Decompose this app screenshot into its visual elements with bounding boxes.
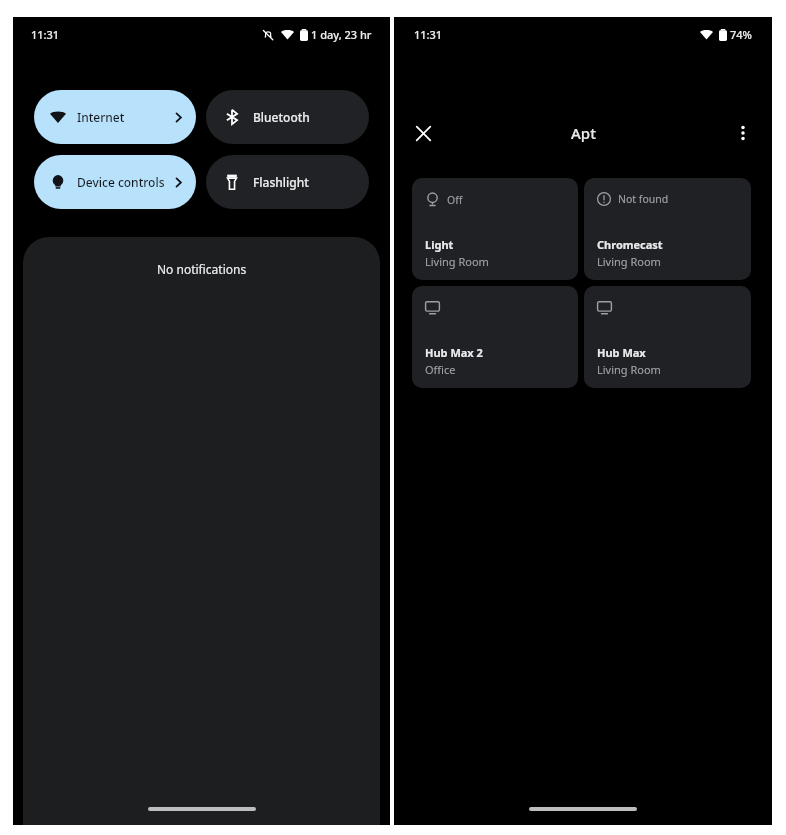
staticText: No notifications — [157, 261, 247, 277]
button[interactable]: Off — [412, 178, 578, 280]
staticText: Flashlight — [253, 174, 309, 190]
button[interactable]: Not found — [584, 178, 751, 280]
staticText: Device controls — [77, 174, 165, 190]
staticText: Off — [447, 193, 463, 207]
staticText: Light — [425, 237, 454, 252]
staticText: 74% — [730, 27, 752, 42]
staticText: Living Room — [597, 362, 661, 377]
staticText: Apt — [571, 123, 596, 143]
button[interactable]: More options — [723, 113, 763, 153]
staticText: 11:31 — [31, 27, 60, 42]
staticText: Bluetooth — [253, 109, 310, 125]
button[interactable]: Bluetooth — [206, 90, 369, 144]
staticText: Hub Max — [597, 345, 646, 360]
staticText: Office — [425, 362, 456, 377]
staticText: 1 day, 23 hr — [311, 27, 372, 42]
button[interactable]: Hub Max — [584, 286, 751, 388]
button[interactable]: Flashlight — [206, 155, 369, 209]
button[interactable]: Device controls — [34, 155, 196, 209]
staticText: Living Room — [425, 254, 489, 269]
button[interactable]: Close — [403, 113, 443, 153]
staticText: Chromecast — [597, 237, 663, 252]
button[interactable]: Hub Max 2 — [412, 286, 578, 388]
staticText: 11:31 — [414, 27, 443, 42]
staticText: Not found — [618, 192, 669, 206]
staticText: Hub Max 2 — [425, 345, 483, 360]
staticText: Internet — [77, 109, 125, 125]
button[interactable]: Internet — [34, 90, 196, 144]
staticText: Living Room — [597, 254, 661, 269]
